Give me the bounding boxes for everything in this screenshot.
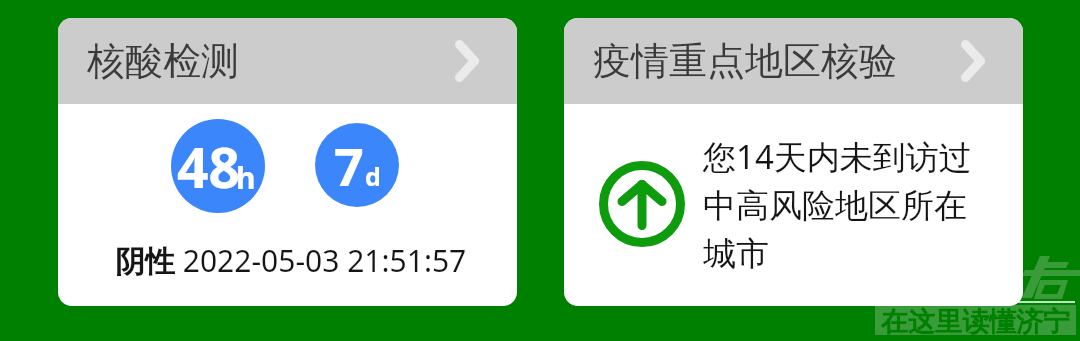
staticText: 7 xyxy=(334,130,364,201)
button[interactable]: 7天核酸 xyxy=(315,123,399,207)
button[interactable]: 疫情重点地区核验 xyxy=(564,18,1023,104)
staticText: 核酸检测 xyxy=(87,37,239,85)
staticText: 阴性 xyxy=(115,243,175,281)
staticText: 2022-05-03 21:51:57 xyxy=(175,240,467,281)
button[interactable]: 48小时核酸 xyxy=(171,119,265,213)
staticText: d xyxy=(365,159,381,193)
staticText: 在这里读懂济宁 xyxy=(881,305,1070,335)
staticText: 您14天内未到访过中高风险地区所在城市 xyxy=(703,134,975,275)
staticText: h xyxy=(236,157,256,198)
staticText: 疫情重点地区核验 xyxy=(593,37,897,85)
button[interactable]: 核酸检测 xyxy=(58,18,517,104)
staticText: 48 xyxy=(177,129,240,204)
